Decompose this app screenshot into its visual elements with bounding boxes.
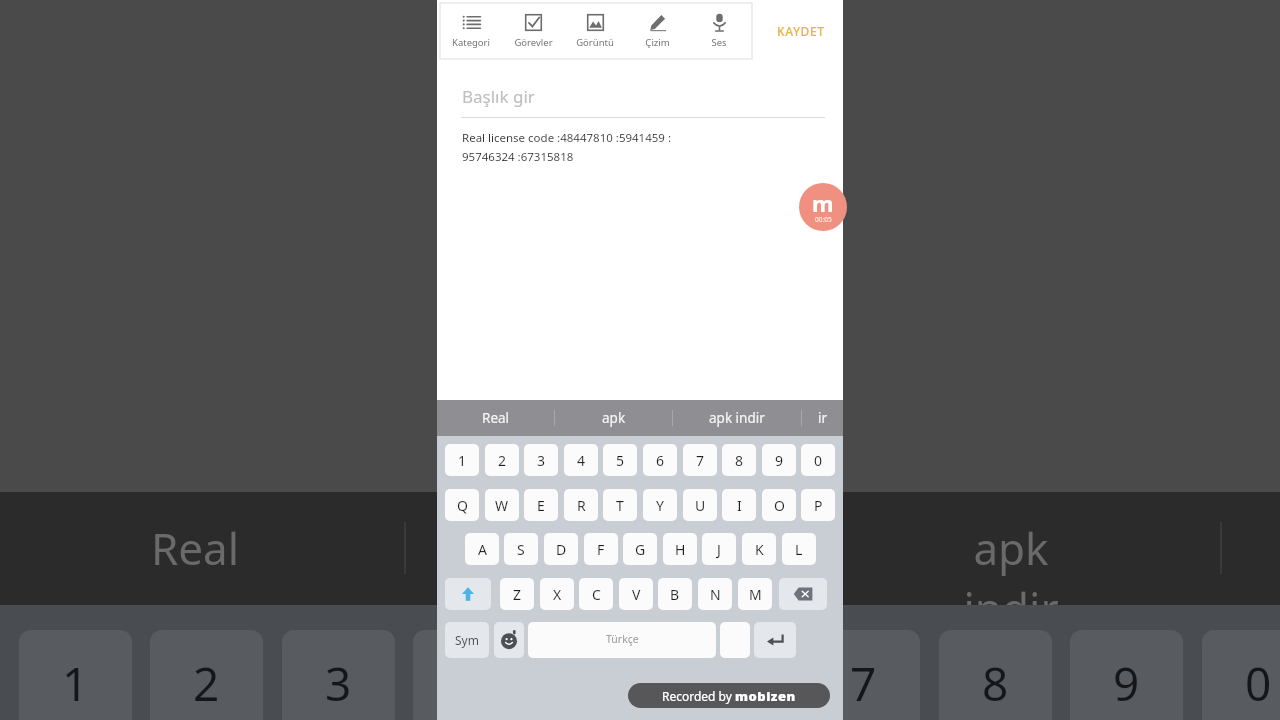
staticText: 00:05 xyxy=(815,215,832,224)
button[interactable]: H xyxy=(663,533,697,565)
staticText: Real license code :48447810 :5941459 : 9… xyxy=(462,130,671,164)
button[interactable]: Görevler xyxy=(502,3,564,59)
staticText: 8 xyxy=(735,451,744,470)
staticText: C xyxy=(592,585,601,604)
button[interactable]: apk indir xyxy=(673,400,801,436)
staticText: F xyxy=(597,540,605,559)
staticText: ir xyxy=(818,409,828,427)
button[interactable]: ir xyxy=(802,400,843,436)
staticText: Recorded by xyxy=(662,688,735,704)
button[interactable]: B xyxy=(658,578,692,610)
staticText: V xyxy=(632,585,641,604)
staticText: 9 xyxy=(1113,652,1140,715)
staticText: apk indir xyxy=(921,518,1101,631)
staticText: E xyxy=(537,496,545,515)
staticText: B xyxy=(670,585,680,604)
button[interactable]: R xyxy=(564,489,598,521)
button[interactable]: X xyxy=(540,578,574,610)
staticText: W xyxy=(495,496,509,515)
staticText: G xyxy=(635,540,646,559)
staticText: 0 xyxy=(814,451,823,470)
button[interactable]: Kategori xyxy=(440,3,502,59)
button[interactable]: Çizim xyxy=(626,3,688,59)
button[interactable]: Real xyxy=(437,400,554,436)
button[interactable]: KAYDET xyxy=(773,17,829,45)
button[interactable]: 3 xyxy=(524,444,558,476)
staticText: Real xyxy=(105,518,285,578)
button[interactable]: 9 xyxy=(762,444,796,476)
button[interactable]: apk xyxy=(555,400,672,436)
button[interactable]: Mobizen recorder xyxy=(799,183,847,231)
staticText: Q xyxy=(457,496,468,515)
staticText: 7 xyxy=(850,652,877,715)
button[interactable]: G xyxy=(623,533,657,565)
button[interactable]: 4 xyxy=(564,444,598,476)
staticText: Başlık gir xyxy=(462,85,535,108)
staticText: N xyxy=(710,585,721,604)
button[interactable]: Q xyxy=(445,489,479,521)
button[interactable]: P xyxy=(801,489,835,521)
button[interactable]: Görüntü xyxy=(564,3,626,59)
staticText: Türkçe xyxy=(606,632,639,646)
button[interactable]: Enter xyxy=(754,622,796,658)
staticText: D xyxy=(556,540,567,559)
button[interactable]: D xyxy=(544,533,578,565)
staticText: 1 xyxy=(62,652,89,715)
button[interactable]: L xyxy=(782,533,816,565)
button[interactable]: J xyxy=(702,533,736,565)
staticText: 2 xyxy=(193,652,220,715)
button[interactable]: 1 xyxy=(445,444,479,476)
staticText: L xyxy=(795,540,803,559)
staticText: apk indir xyxy=(709,409,765,427)
button[interactable]: Z xyxy=(500,578,534,610)
button[interactable]: M xyxy=(738,578,772,610)
button[interactable]: V xyxy=(619,578,653,610)
button[interactable]: E xyxy=(524,489,558,521)
button[interactable]: O xyxy=(762,489,796,521)
staticText: M xyxy=(749,585,762,604)
button[interactable]: 5 xyxy=(603,444,637,476)
button[interactable]: 2 xyxy=(485,444,519,476)
staticText: Real xyxy=(482,409,510,427)
staticText: 5 xyxy=(587,652,614,715)
staticText: 6 xyxy=(656,451,665,470)
button[interactable]: 0 xyxy=(801,444,835,476)
button[interactable]: T xyxy=(603,489,637,521)
button[interactable]: Emoji xyxy=(494,622,524,658)
button[interactable]: W xyxy=(485,489,519,521)
button[interactable]: S xyxy=(504,533,538,565)
staticText: 1 xyxy=(458,451,467,470)
staticText: 4 xyxy=(577,451,586,470)
staticText: O xyxy=(774,496,785,515)
button[interactable]: 8 xyxy=(722,444,756,476)
button[interactable]: Shift xyxy=(445,578,491,610)
staticText: Çizim xyxy=(645,36,670,49)
button[interactable]: 6 xyxy=(643,444,677,476)
button[interactable]: A xyxy=(465,533,499,565)
staticText: 6 xyxy=(719,652,746,715)
staticText: H xyxy=(675,540,686,559)
staticText: I xyxy=(737,496,742,515)
button[interactable]: Y xyxy=(643,489,677,521)
button[interactable]: Period xyxy=(720,622,750,658)
button[interactable]: Backspace xyxy=(779,578,827,610)
button[interactable]: K xyxy=(742,533,776,565)
button[interactable]: F xyxy=(584,533,618,565)
button[interactable]: C xyxy=(579,578,613,610)
button[interactable]: N xyxy=(698,578,732,610)
button[interactable]: Türkçe xyxy=(528,622,716,658)
button[interactable]: Sym xyxy=(445,622,489,658)
staticText: 8 xyxy=(982,652,1009,715)
staticText: S xyxy=(517,540,525,559)
button[interactable]: 7 xyxy=(683,444,717,476)
staticText: KAYDET xyxy=(777,23,825,39)
staticText: X xyxy=(553,585,562,604)
staticText: Kategori xyxy=(452,36,490,49)
staticText: 9 xyxy=(775,451,784,470)
button[interactable]: Ses xyxy=(688,3,750,59)
button[interactable]: I xyxy=(722,489,756,521)
staticText: Sym xyxy=(455,632,479,648)
staticText: T xyxy=(616,496,624,515)
button[interactable]: U xyxy=(683,489,717,521)
